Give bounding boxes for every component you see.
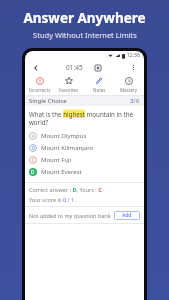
staticText: 01:45: [66, 63, 83, 72]
staticText: Your score is 0 / 1.: [29, 196, 76, 203]
button[interactable]: D: [29, 166, 140, 178]
staticText: C: [32, 157, 35, 163]
button[interactable]: Add: [114, 211, 140, 220]
button[interactable]: Back: [30, 62, 41, 73]
button[interactable]: Card view: [92, 62, 103, 73]
staticText: Mastery: [120, 87, 138, 93]
staticText: B: [32, 145, 35, 151]
staticText: Mount Fuji: [41, 156, 72, 164]
button[interactable]: Incorrects: [25, 75, 54, 95]
staticText: Mount Olympus: [41, 132, 87, 140]
staticText: 12:36: [127, 52, 140, 59]
staticText: Favorites: [59, 87, 79, 93]
button[interactable]: More options: [128, 62, 139, 73]
staticText: Correct answer : D, Yours : C: [29, 186, 102, 193]
staticText: Study Without Internet Limits: [33, 30, 137, 40]
button[interactable]: Favorites: [54, 75, 84, 95]
button[interactable]: A: [29, 130, 140, 142]
button[interactable]: B: [29, 142, 140, 154]
button[interactable]: Mastery: [114, 75, 144, 95]
button[interactable]: Notes: [84, 75, 114, 95]
staticText: What is the highest mountain in the worl…: [29, 110, 140, 126]
staticText: Notes: [93, 87, 106, 93]
staticText: D: [31, 169, 35, 175]
staticText: Mount Kilimanjaro: [41, 144, 94, 152]
staticText: Not added to my question bank: [29, 212, 111, 219]
staticText: Add: [122, 212, 132, 219]
staticText: A: [32, 133, 35, 139]
staticText: 3/8: [130, 97, 140, 105]
staticText: Single Choice: [29, 97, 67, 105]
staticText: Incorrects: [29, 87, 51, 93]
staticText: Answer Anywhere: [23, 9, 146, 27]
staticText: Mount Everest: [41, 168, 82, 176]
button[interactable]: C: [29, 154, 140, 166]
